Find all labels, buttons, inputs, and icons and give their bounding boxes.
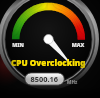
button[interactable]: CPU Overclocking gauge <box>0 0 100 98</box>
